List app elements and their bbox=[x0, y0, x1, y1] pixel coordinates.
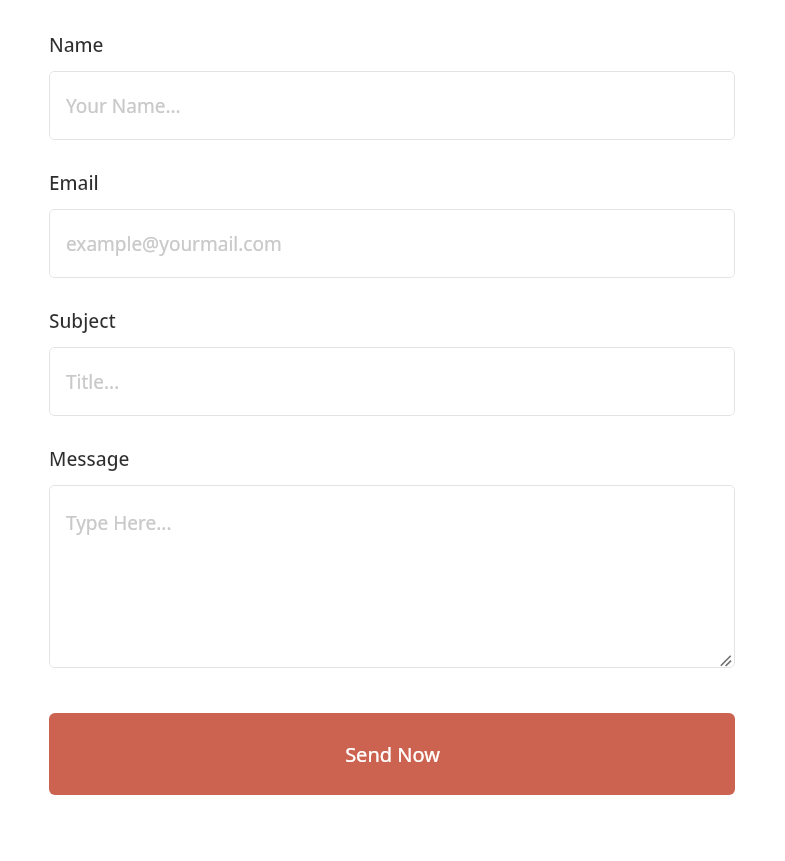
staticText: Email bbox=[49, 170, 99, 196]
button[interactable]: example@yourmail.com bbox=[49, 209, 735, 278]
staticText: Subject bbox=[49, 308, 116, 334]
staticText: example@yourmail.com bbox=[66, 231, 282, 257]
staticText: Type Here... bbox=[66, 510, 172, 536]
staticText: Send Now bbox=[345, 741, 440, 768]
button[interactable]: Type Here... bbox=[49, 485, 735, 668]
button[interactable]: Send Now bbox=[49, 713, 735, 795]
staticText: Name bbox=[49, 32, 104, 58]
button[interactable]: Your Name... bbox=[49, 71, 735, 140]
staticText: Your Name... bbox=[66, 93, 181, 119]
button[interactable]: Title... bbox=[49, 347, 735, 416]
staticText: Title... bbox=[66, 369, 120, 395]
staticText: Message bbox=[49, 446, 130, 472]
